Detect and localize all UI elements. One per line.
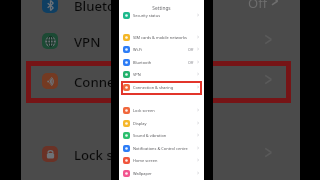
button[interactable]: Security status bbox=[119, 9, 204, 21]
staticText: Connection & sharing bbox=[74, 73, 211, 89]
button[interactable]: Home screen bbox=[119, 154, 204, 166]
staticText: Security status bbox=[133, 13, 161, 18]
staticText: Off bbox=[188, 60, 194, 65]
button[interactable]: Lock screen bbox=[119, 104, 204, 116]
staticText: VPN bbox=[74, 33, 101, 49]
staticText: Settings bbox=[119, 5, 204, 12]
staticText: Wallpaper bbox=[133, 171, 152, 176]
button[interactable]: Notifications & Control centre bbox=[119, 142, 204, 154]
staticText: Lock screen bbox=[133, 108, 155, 113]
button[interactable]: Connection & sharing bbox=[42, 73, 211, 89]
staticText: Connection & sharing bbox=[133, 85, 174, 90]
button[interactable]: Connection & sharing bbox=[119, 81, 204, 93]
staticText: Off bbox=[188, 47, 194, 52]
button[interactable]: Wallpaper bbox=[119, 167, 204, 179]
button[interactable]: Wi-Fi bbox=[119, 43, 204, 55]
button[interactable]: VPN bbox=[119, 68, 204, 80]
staticText: Notifications & Control centre bbox=[133, 146, 188, 151]
button[interactable]: Bluetooth bbox=[42, 0, 137, 13]
button[interactable]: Sound & vibration bbox=[119, 129, 204, 141]
staticText: Lock screen bbox=[74, 146, 148, 162]
staticText: Bluetooth bbox=[133, 60, 152, 65]
staticText: Display bbox=[133, 121, 147, 126]
staticText: SIM cards & mobile networks bbox=[133, 35, 187, 40]
button[interactable]: Lock screen bbox=[42, 146, 148, 162]
button[interactable]: VPN bbox=[42, 33, 101, 49]
button[interactable]: Display bbox=[119, 117, 204, 129]
staticText: Home screen bbox=[133, 158, 158, 163]
button[interactable]: SIM cards & mobile networks bbox=[119, 31, 204, 43]
staticText: Bluetooth bbox=[74, 0, 137, 13]
staticText: VPN bbox=[133, 72, 141, 77]
staticText: Off bbox=[248, 0, 268, 12]
staticText: Wi-Fi bbox=[133, 47, 143, 52]
staticText: Sound & vibration bbox=[133, 133, 167, 138]
button[interactable]: Bluetooth bbox=[119, 56, 204, 68]
